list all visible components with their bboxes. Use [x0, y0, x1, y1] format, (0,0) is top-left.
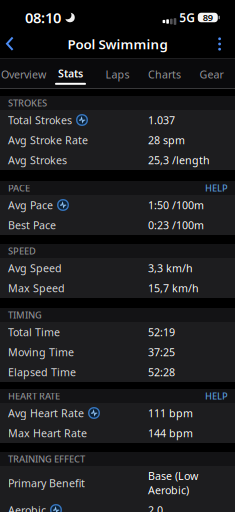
staticText: Stats — [58, 66, 83, 80]
staticText: Aerobic — [8, 503, 46, 512]
staticText: Total Strokes — [8, 113, 72, 127]
staticText: Overview — [1, 67, 46, 81]
staticText: TRAINING EFFECT — [8, 453, 85, 465]
staticText: Primary Benefit — [8, 476, 85, 490]
staticText: TIMING — [8, 309, 42, 321]
staticText: Pool Swimming — [67, 35, 167, 53]
staticText: 15,7 km/h — [148, 281, 199, 295]
staticText: 144 bpm — [148, 426, 193, 440]
staticText: 111 bpm — [148, 406, 193, 420]
button[interactable]: About Avg Heart Rate — [88, 407, 100, 419]
staticText: Avg Stroke Rate — [8, 133, 88, 147]
staticText: STROKES — [8, 97, 47, 109]
button[interactable]: HELP — [205, 182, 228, 194]
staticText: Base (Low Aerobic) — [148, 469, 198, 497]
staticText: Avg Strokes — [8, 153, 67, 167]
staticText: 52:19 — [148, 325, 175, 339]
staticText: 3,3 km/h — [148, 261, 193, 275]
staticText: Charts — [148, 67, 181, 81]
staticText: 1.037 — [148, 113, 175, 127]
staticText: 2.0 — [148, 503, 163, 512]
staticText: Max Speed — [8, 281, 65, 295]
staticText: Elapsed Time — [8, 365, 76, 379]
button[interactable]: Back — [0, 30, 24, 58]
button[interactable]: HELP — [205, 390, 228, 402]
button[interactable]: About Total Strokes — [76, 114, 88, 126]
staticText: Max Heart Rate — [8, 426, 87, 440]
button[interactable]: About Aerobic — [50, 504, 62, 512]
button[interactable]: Charts — [141, 59, 188, 88]
button[interactable]: Laps — [94, 59, 141, 88]
staticText: HEART RATE — [8, 390, 60, 402]
staticText: 89 — [203, 11, 213, 24]
staticText: Avg Heart Rate — [8, 406, 84, 420]
button[interactable]: Overview — [0, 59, 47, 88]
button[interactable]: Stats — [47, 59, 94, 88]
staticText: 25,3 /length — [148, 153, 210, 167]
staticText: SPEED — [8, 245, 36, 257]
staticText: 37:25 — [148, 345, 175, 359]
staticText: Gear — [199, 67, 223, 81]
staticText: 08:10 — [25, 8, 61, 27]
button[interactable]: About Avg Pace — [57, 199, 69, 211]
staticText: Total Time — [8, 325, 60, 339]
staticText: Best Pace — [8, 218, 56, 232]
staticText: PACE — [8, 182, 30, 194]
staticText: Avg Speed — [8, 261, 62, 275]
staticText: 1:50 /100m — [148, 198, 204, 212]
staticText: 52:28 — [148, 365, 175, 379]
staticText: 0:23 /100m — [148, 218, 204, 232]
staticText: Laps — [105, 67, 129, 81]
button[interactable]: More options — [210, 30, 235, 58]
staticText: 28 spm — [148, 133, 185, 147]
staticText: HELP — [205, 390, 228, 402]
staticText: Avg Pace — [8, 198, 53, 212]
staticText: HELP — [205, 182, 228, 194]
staticText: Moving Time — [8, 345, 74, 359]
staticText: 5G — [179, 9, 195, 25]
button[interactable]: Gear — [188, 59, 235, 88]
